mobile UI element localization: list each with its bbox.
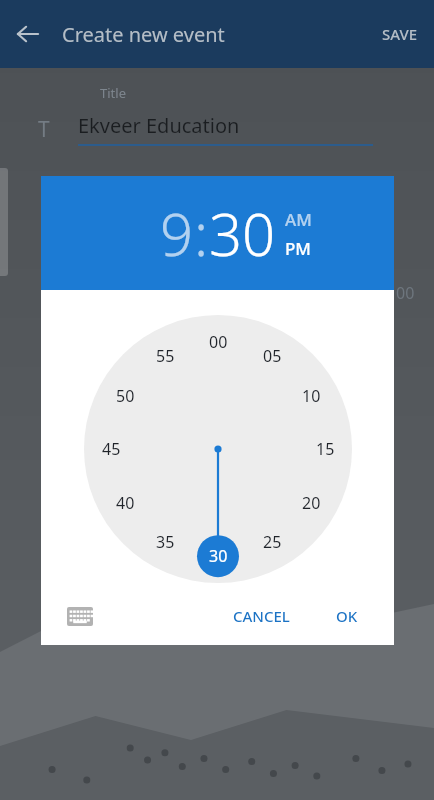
staticText: 55: [156, 345, 175, 367]
button[interactable]: [84, 315, 352, 583]
staticText: 40: [116, 492, 135, 514]
button[interactable]: AM: [285, 208, 312, 231]
staticText: 30: [209, 194, 276, 273]
button[interactable]: 00: [84, 315, 352, 583]
button[interactable]: Switch to text input: [59, 595, 101, 637]
staticText: 10: [302, 385, 321, 407]
staticText: 00: [209, 331, 228, 353]
staticText: PM: [285, 237, 311, 260]
staticText: OK: [336, 606, 358, 626]
staticText: 50: [116, 385, 135, 407]
staticText: 45: [102, 438, 121, 460]
staticText: 35: [156, 531, 175, 553]
staticText: 15: [316, 438, 335, 460]
staticText: Title: [100, 84, 126, 102]
staticText: 25: [263, 531, 282, 553]
staticText: 9: [160, 194, 194, 273]
staticText: 05: [263, 345, 282, 367]
button[interactable]: CANCEL: [219, 594, 304, 638]
button[interactable]: 9: [160, 194, 194, 273]
staticText: SAVE: [382, 24, 418, 44]
button[interactable]: SAVE: [366, 10, 434, 58]
staticText: :: [194, 194, 209, 273]
staticText: 30: [209, 545, 228, 567]
staticText: CANCEL: [233, 606, 290, 626]
staticText: 20: [302, 492, 321, 514]
button[interactable]: OK: [322, 594, 372, 638]
staticText: T: [38, 115, 50, 144]
staticText: Create new event: [62, 21, 225, 48]
button[interactable]: PM: [285, 237, 311, 260]
staticText: Ekveer Education: [78, 112, 240, 139]
staticText: 00: [396, 282, 415, 304]
button[interactable]: 30: [209, 194, 276, 273]
staticText: AM: [285, 208, 312, 231]
button[interactable]: Back: [0, 6, 56, 62]
